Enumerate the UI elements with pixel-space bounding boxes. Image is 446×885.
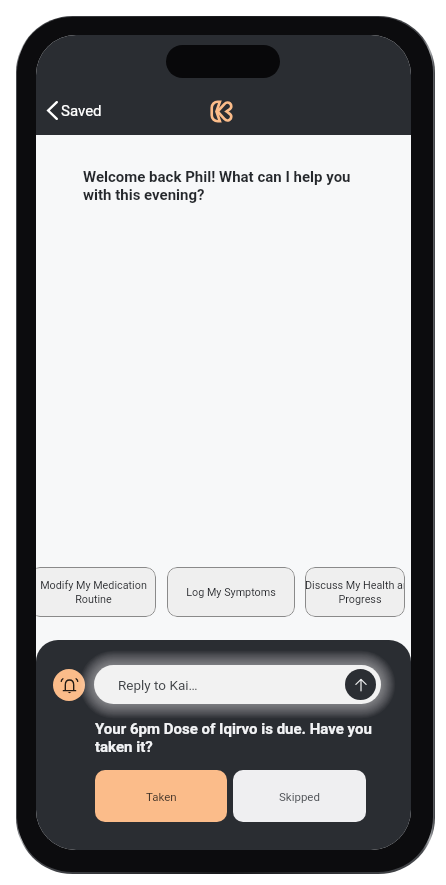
button[interactable]: Saved (44, 97, 105, 124)
staticText: Modify My Medication Routine (40, 579, 147, 606)
staticText: Log My Symptoms (186, 586, 276, 599)
button[interactable]: Reminders (53, 669, 85, 701)
staticText: Taken (146, 790, 177, 803)
button[interactable]: Taken (95, 770, 227, 822)
staticText: Reply to Kai… (118, 677, 198, 693)
button[interactable]: Discuss My Health and Progress (305, 567, 405, 617)
button[interactable]: Log My Symptoms (167, 567, 295, 617)
button[interactable]: Send (345, 669, 376, 700)
staticText: Your 6pm Dose of Iqirvo is due. Have you… (95, 720, 380, 755)
button[interactable]: Modify My Medication Routine (36, 567, 156, 617)
staticText: Saved (61, 102, 102, 120)
staticText: Welcome back Phil! What can I help you w… (83, 168, 368, 203)
staticText: Skipped (279, 790, 320, 803)
button[interactable]: Skipped (233, 770, 366, 822)
staticText: Discuss My Health and Progress (305, 579, 405, 606)
button[interactable]: Reply to Kai… (94, 665, 381, 704)
